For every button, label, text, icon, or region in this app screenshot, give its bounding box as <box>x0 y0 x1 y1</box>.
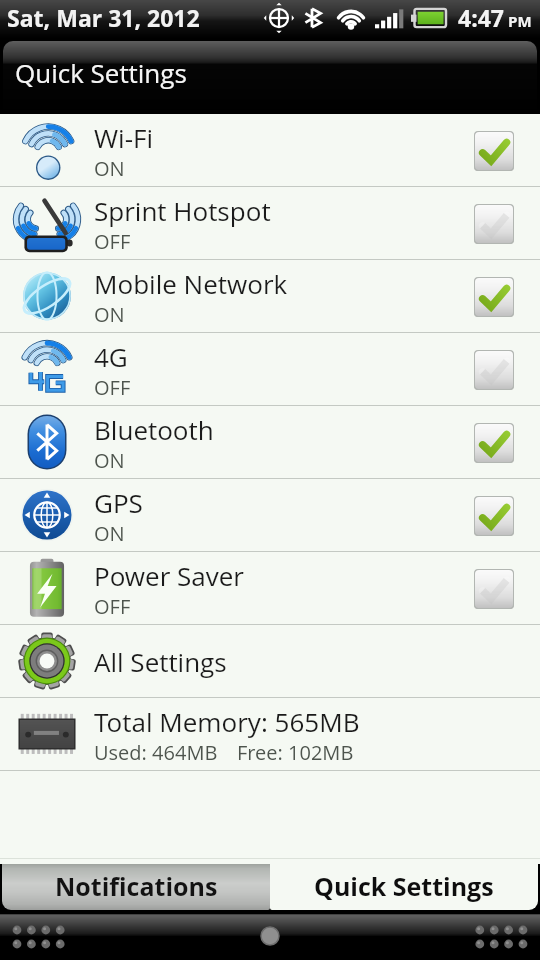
button[interactable]: All Settings <box>0 625 540 698</box>
staticText: Sprint Hotspot <box>94 193 271 228</box>
staticText: Wi-Fi <box>94 120 154 155</box>
staticText: Quick Settings <box>314 869 494 903</box>
button[interactable]: Power Saver <box>0 552 540 625</box>
staticText: Bluetooth <box>94 412 214 447</box>
staticText: All Settings <box>94 644 227 679</box>
staticText: Notifications <box>55 869 218 903</box>
button[interactable]: Quick Settings <box>270 864 538 910</box>
staticText: ON <box>94 155 125 182</box>
staticText: Free: 102MB <box>237 739 354 766</box>
button[interactable]: Sprint Hotspot <box>0 187 540 260</box>
button[interactable]: Mobile Network toggle <box>474 277 514 317</box>
staticText: Mobile Network <box>94 266 288 301</box>
staticText: Power Saver <box>94 558 244 593</box>
staticText: OFF <box>94 374 131 401</box>
staticText: GPS <box>94 485 143 520</box>
button[interactable]: Bluetooth <box>0 406 540 479</box>
staticText: Sat, Mar 31, 2012 <box>7 2 200 33</box>
button[interactable]: Notifications <box>2 864 270 910</box>
button[interactable]: GPS toggle <box>474 496 514 536</box>
staticText: OFF <box>94 593 131 620</box>
button[interactable]: GPS <box>0 479 540 552</box>
staticText: ON <box>94 301 125 328</box>
staticText: ON <box>94 520 125 547</box>
staticText: 4:47 <box>458 2 504 33</box>
staticText: Used: 464MB <box>94 739 218 766</box>
button[interactable]: Power Saver toggle <box>474 569 514 609</box>
button[interactable]: 4G <box>0 333 540 406</box>
button[interactable]: Mobile Network <box>0 260 540 333</box>
button[interactable]: 4G toggle <box>474 350 514 390</box>
staticText: Total Memory: 565MB <box>94 704 360 739</box>
button[interactable]: Bluetooth toggle <box>474 423 514 463</box>
staticText: Quick Settings <box>15 55 187 90</box>
button[interactable]: Wi-Fi toggle <box>474 131 514 171</box>
staticText: OFF <box>94 228 131 255</box>
staticText: ON <box>94 447 125 474</box>
button[interactable]: Wi-Fi <box>0 114 540 187</box>
button[interactable]: Sprint Hotspot toggle <box>474 204 514 244</box>
staticText: PM <box>508 11 532 31</box>
staticText: 4G <box>94 339 128 374</box>
